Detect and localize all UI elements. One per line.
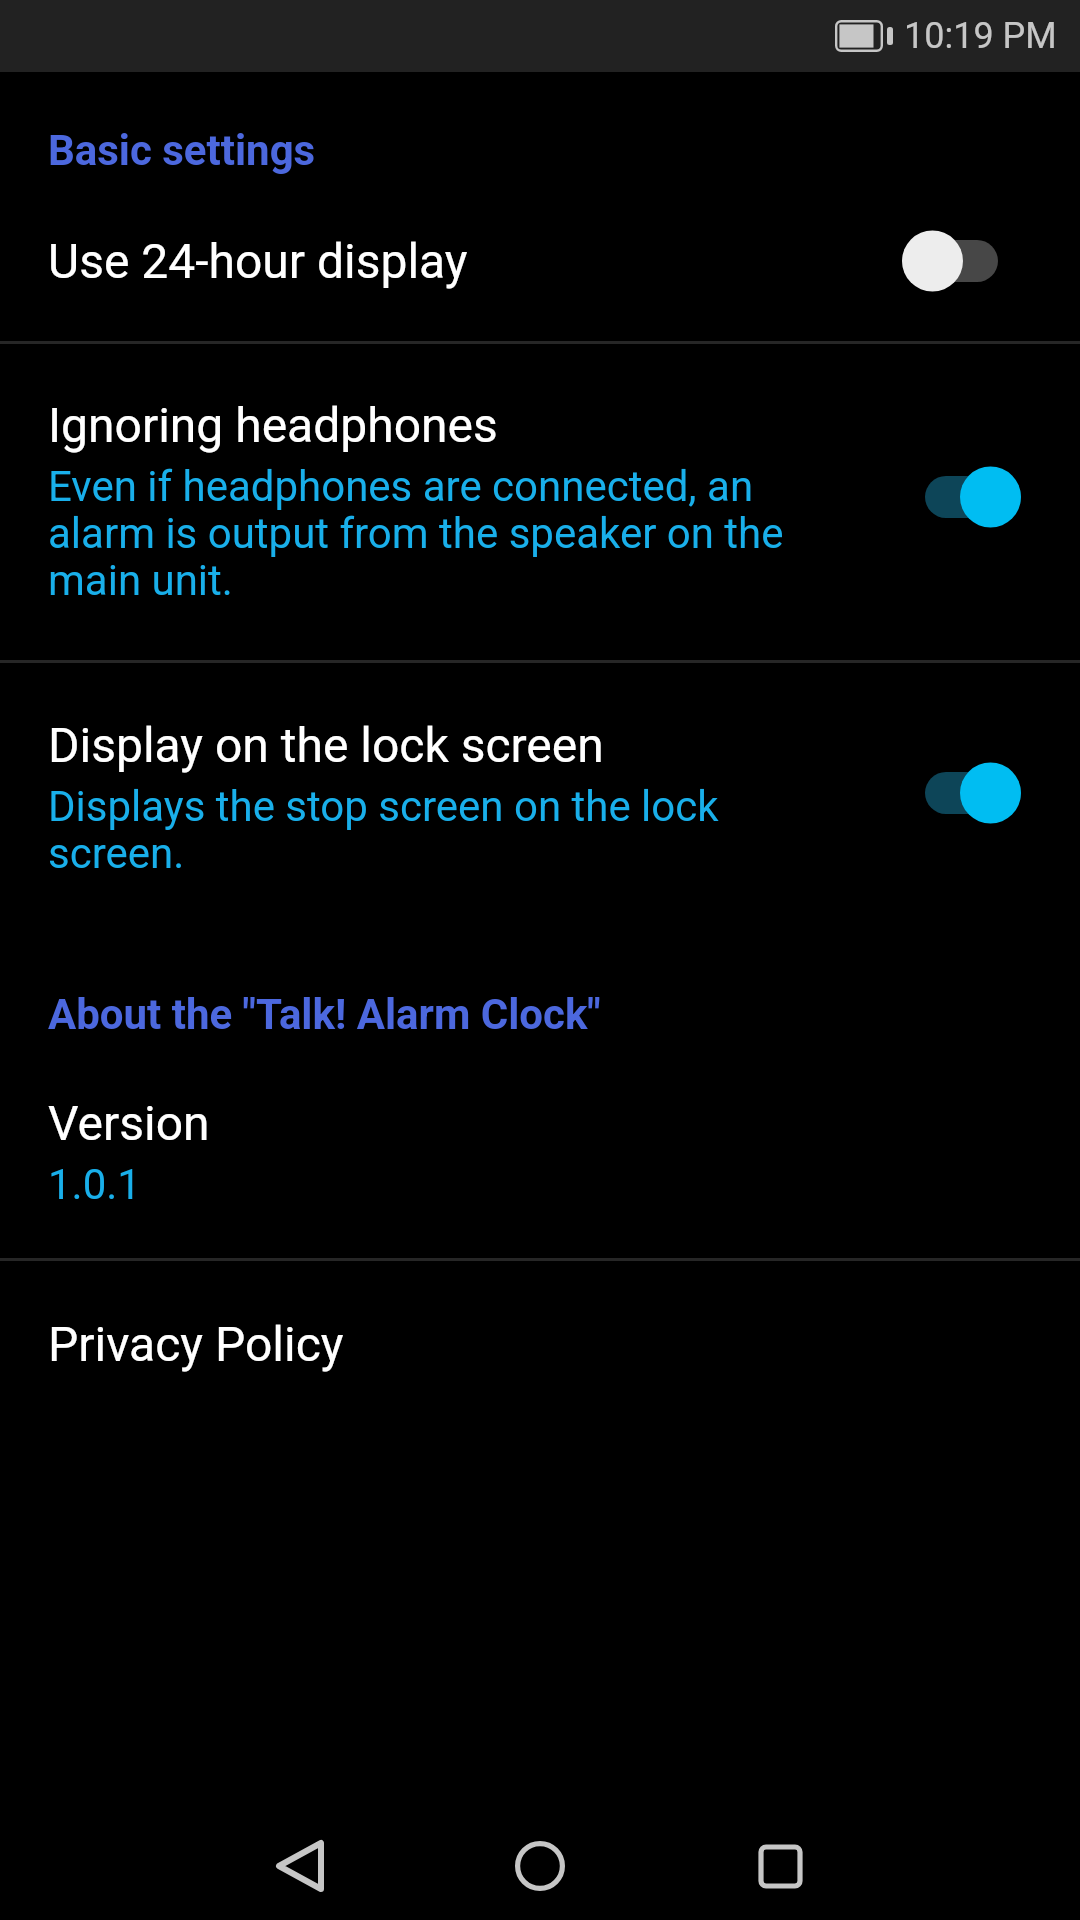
button[interactable]: Use 24-hour display <box>0 230 1080 341</box>
button[interactable]: Setting disabled <box>902 230 998 292</box>
button[interactable]: Display on the lock screen <box>0 663 1080 990</box>
staticText: Basic settings <box>48 126 316 175</box>
button[interactable]: Back <box>220 1812 380 1920</box>
staticText: Even if headphones are connected, an ala… <box>48 462 808 605</box>
button[interactable]: Setting enabled <box>925 762 1021 824</box>
staticText: Ignoring headphones <box>48 397 498 453</box>
button[interactable]: Ignoring headphones <box>0 344 1080 660</box>
staticText: 1.0.1 <box>48 1160 141 1209</box>
button[interactable]: Setting enabled <box>925 466 1021 528</box>
staticText: About the "Talk! Alarm Clock" <box>48 990 601 1039</box>
staticText: Displays the stop screen on the lock scr… <box>48 782 808 878</box>
staticText: Version <box>48 1095 210 1151</box>
button[interactable]: Recent apps <box>700 1812 860 1920</box>
staticText: Use 24-hour display <box>48 233 468 289</box>
staticText: Privacy Policy <box>48 1316 344 1372</box>
staticText: 10:19 PM <box>904 15 1057 57</box>
button[interactable]: Home <box>460 1812 620 1920</box>
button[interactable]: Version <box>0 1095 1080 1258</box>
staticText: Display on the lock screen <box>48 717 604 773</box>
button[interactable]: Privacy Policy <box>0 1261 1080 1372</box>
